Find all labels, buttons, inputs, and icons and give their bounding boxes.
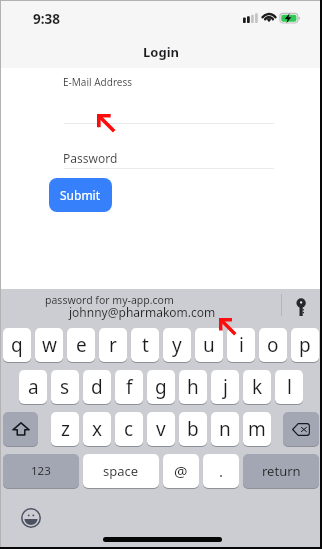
- staticText: v: [156, 416, 166, 442]
- staticText: E-Mail Address: [63, 75, 133, 89]
- staticText: b: [187, 416, 199, 442]
- button[interactable]: e: [67, 328, 95, 362]
- staticText: f: [126, 374, 133, 400]
- staticText: c: [124, 416, 134, 442]
- staticText: k: [252, 374, 263, 400]
- button[interactable]: z: [51, 412, 79, 446]
- button[interactable]: p: [291, 328, 319, 362]
- button[interactable]: b: [179, 412, 207, 446]
- staticText: s: [60, 374, 70, 400]
- button[interactable]: c: [115, 412, 143, 446]
- staticText: password for my-app.com: [45, 293, 174, 307]
- button[interactable]: Submit: [49, 178, 112, 212]
- button[interactable]: w: [35, 328, 63, 362]
- staticText: 123: [31, 463, 51, 479]
- staticText: a: [28, 374, 39, 400]
- staticText: w: [42, 332, 57, 358]
- staticText: n: [219, 416, 231, 442]
- staticText: johnny@pharmakom.com: [69, 304, 216, 320]
- button[interactable]: Passwords: [294, 296, 308, 318]
- button[interactable]: g: [147, 370, 175, 404]
- staticText: return: [262, 462, 301, 480]
- staticText: x: [92, 416, 103, 442]
- button[interactable]: x: [83, 412, 111, 446]
- button[interactable]: @: [163, 454, 199, 488]
- button[interactable]: s: [51, 370, 79, 404]
- staticText: e: [76, 332, 87, 358]
- button[interactable]: h: [179, 370, 207, 404]
- staticText: d: [91, 374, 103, 400]
- button[interactable]: return: [243, 454, 319, 488]
- staticText: j: [223, 374, 228, 400]
- button[interactable]: Emoji: [21, 508, 41, 528]
- staticText: y: [172, 332, 182, 358]
- button[interactable]: u: [195, 328, 223, 362]
- button[interactable]: l: [275, 370, 303, 404]
- button[interactable]: y: [163, 328, 191, 362]
- staticText: Login: [0, 43, 322, 61]
- staticText: u: [203, 332, 215, 358]
- staticText: t: [142, 332, 149, 358]
- button[interactable]: n: [211, 412, 239, 446]
- button[interactable]: t: [131, 328, 159, 362]
- button[interactable]: a: [19, 370, 47, 404]
- button[interactable]: f: [115, 370, 143, 404]
- staticText: i: [239, 332, 244, 358]
- button[interactable]: space: [83, 454, 159, 488]
- staticText: r: [109, 332, 117, 358]
- staticText: g: [155, 374, 167, 400]
- staticText: Password: [63, 150, 118, 166]
- staticText: m: [248, 416, 266, 442]
- button[interactable]: o: [259, 328, 287, 362]
- staticText: l: [287, 374, 292, 400]
- button[interactable]: d: [83, 370, 111, 404]
- staticText: Submit: [60, 187, 101, 203]
- staticText: h: [187, 374, 199, 400]
- staticText: q: [11, 332, 23, 358]
- button[interactable]: q: [3, 328, 31, 362]
- button[interactable]: .: [203, 454, 239, 488]
- button[interactable]: password for my-app.com: [0, 289, 322, 323]
- button[interactable]: Backspace: [283, 412, 319, 446]
- button[interactable]: Shift: [3, 412, 38, 446]
- staticText: o: [267, 332, 279, 358]
- staticText: @: [174, 461, 188, 481]
- button[interactable]: j: [211, 370, 239, 404]
- button[interactable]: k: [243, 370, 271, 404]
- button[interactable]: i: [227, 328, 255, 362]
- button[interactable]: 123: [3, 454, 79, 488]
- staticText: z: [61, 416, 70, 442]
- staticText: space: [103, 462, 139, 480]
- staticText: p: [299, 332, 311, 358]
- button[interactable]: r: [99, 328, 127, 362]
- staticText: 9:38: [33, 10, 60, 28]
- staticText: .: [219, 461, 224, 481]
- button[interactable]: v: [147, 412, 175, 446]
- button[interactable]: m: [243, 412, 271, 446]
